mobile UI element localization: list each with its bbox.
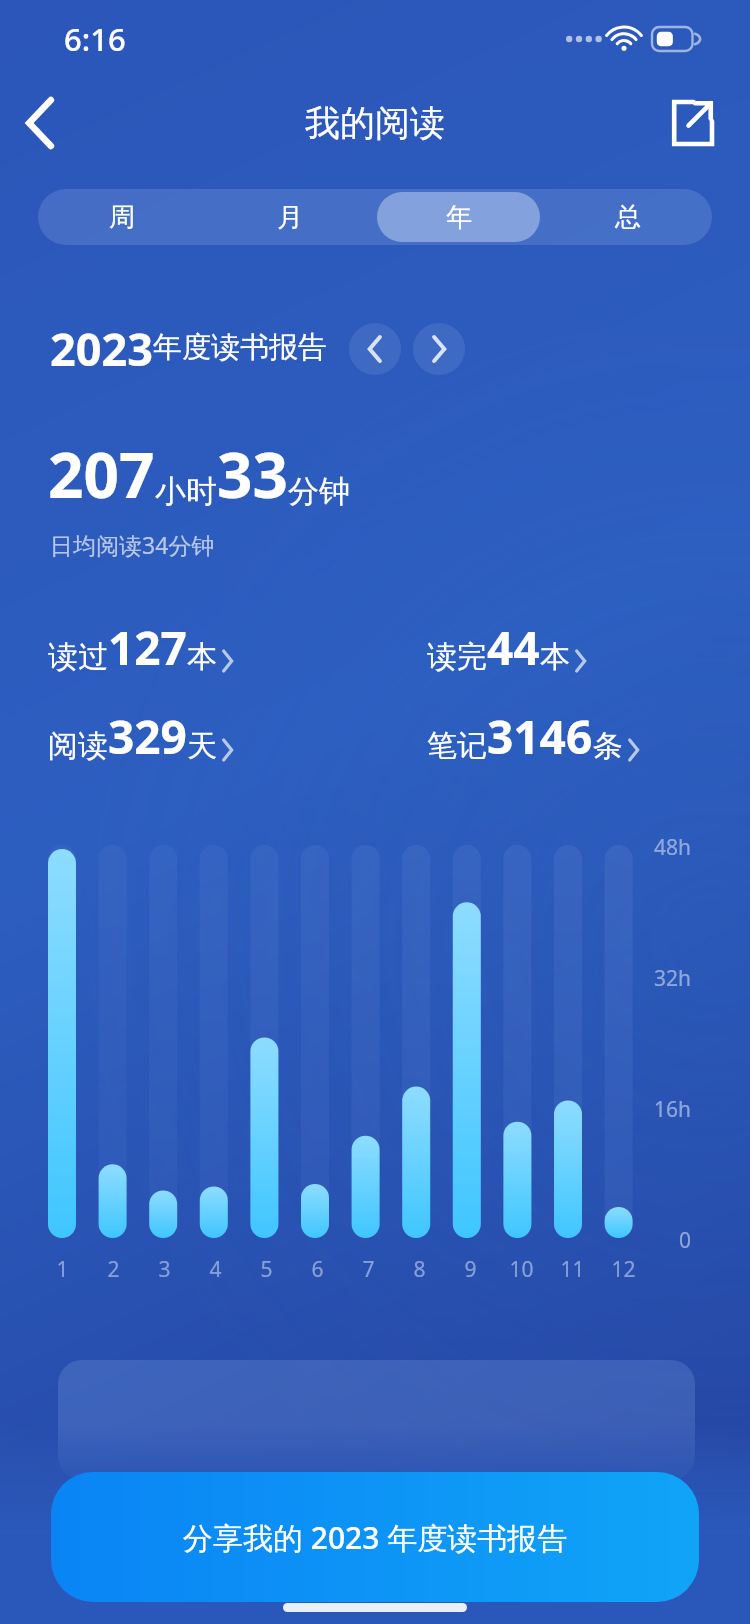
staticText: 6	[311, 1255, 324, 1284]
staticText: 8	[413, 1255, 426, 1284]
staticText: 2	[107, 1255, 120, 1284]
staticText: 我的阅读	[305, 101, 445, 145]
staticText: 分钟	[288, 472, 350, 511]
staticText: 2023	[50, 318, 153, 379]
button[interactable]	[58, 1360, 695, 1480]
staticText: 本	[187, 638, 217, 676]
button[interactable]: Next year	[413, 323, 465, 375]
button[interactable]: 读过	[48, 616, 375, 679]
staticText: 周	[109, 201, 135, 234]
button[interactable]: 读完	[427, 616, 750, 679]
staticText: 7	[362, 1255, 375, 1284]
staticText: 5	[260, 1255, 273, 1284]
staticText: 1	[56, 1255, 69, 1284]
staticText: 分享我的 2023 年度读书报告	[183, 1517, 568, 1558]
button[interactable]: 周	[41, 192, 203, 242]
staticText: 6:16	[64, 18, 126, 60]
staticText: 48h	[654, 833, 692, 862]
staticText: 读过	[48, 638, 108, 676]
button[interactable]: 年	[377, 192, 540, 242]
staticText: 读完	[427, 638, 487, 676]
staticText: 条	[593, 727, 623, 765]
staticText: 天	[187, 727, 217, 765]
staticText: 127	[108, 616, 187, 679]
staticText: 0	[679, 1226, 692, 1255]
staticText: 3	[158, 1255, 171, 1284]
staticText: 阅读	[48, 727, 108, 765]
staticText: 33	[217, 432, 288, 516]
staticText: 9	[464, 1255, 477, 1284]
staticText: 4	[209, 1255, 222, 1284]
staticText: 总	[615, 201, 641, 234]
button[interactable]: 阅读	[48, 705, 375, 768]
staticText: 笔记	[427, 727, 487, 765]
staticText: 月	[277, 201, 303, 234]
staticText: 年度读书报告	[153, 329, 327, 366]
button[interactable]: 总	[546, 192, 709, 242]
staticText: 本	[540, 638, 570, 676]
button[interactable]: 分享我的 2023 年度读书报告	[51, 1472, 699, 1602]
button[interactable]: Back	[6, 89, 74, 157]
staticText: 16h	[654, 1095, 692, 1124]
staticText: 小时	[155, 472, 217, 511]
button[interactable]: Share	[658, 90, 724, 156]
staticText: 11	[560, 1255, 585, 1284]
button[interactable]: Previous year	[349, 323, 401, 375]
staticText: 3146	[487, 705, 593, 768]
staticText: 329	[108, 705, 187, 768]
staticText: 207	[48, 432, 155, 516]
button[interactable]: 月	[209, 192, 371, 242]
button[interactable]: 笔记	[427, 705, 750, 768]
staticText: 日均阅读34分钟	[50, 529, 215, 560]
staticText: 年	[446, 201, 472, 234]
staticText: 10	[509, 1255, 534, 1284]
staticText: 32h	[654, 964, 692, 993]
staticText: 12	[611, 1255, 636, 1284]
staticText: 44	[487, 616, 540, 679]
